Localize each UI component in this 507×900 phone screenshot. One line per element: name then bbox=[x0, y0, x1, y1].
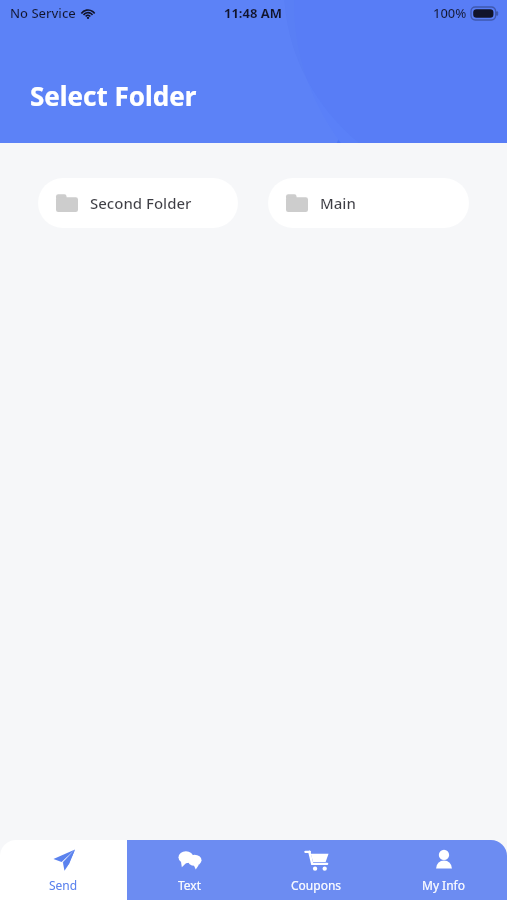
button[interactable]: My Info bbox=[380, 840, 507, 900]
button[interactable]: Coupons bbox=[253, 840, 380, 900]
button[interactable]: Main bbox=[268, 178, 469, 228]
staticText: Text bbox=[178, 877, 202, 893]
staticText: No Service bbox=[10, 4, 76, 22]
staticText: My Info bbox=[422, 877, 465, 893]
staticText: 11:48 AM bbox=[224, 4, 283, 22]
button[interactable]: Text bbox=[127, 840, 253, 900]
staticText: Coupons bbox=[291, 877, 342, 893]
staticText: Send bbox=[49, 877, 78, 893]
button[interactable]: Second Folder bbox=[38, 178, 238, 228]
staticText: Second Folder bbox=[90, 193, 192, 213]
staticText: Select Folder bbox=[30, 78, 197, 113]
staticText: 100% bbox=[433, 4, 467, 22]
staticText: Main bbox=[320, 193, 356, 213]
button[interactable]: Send bbox=[0, 840, 127, 900]
